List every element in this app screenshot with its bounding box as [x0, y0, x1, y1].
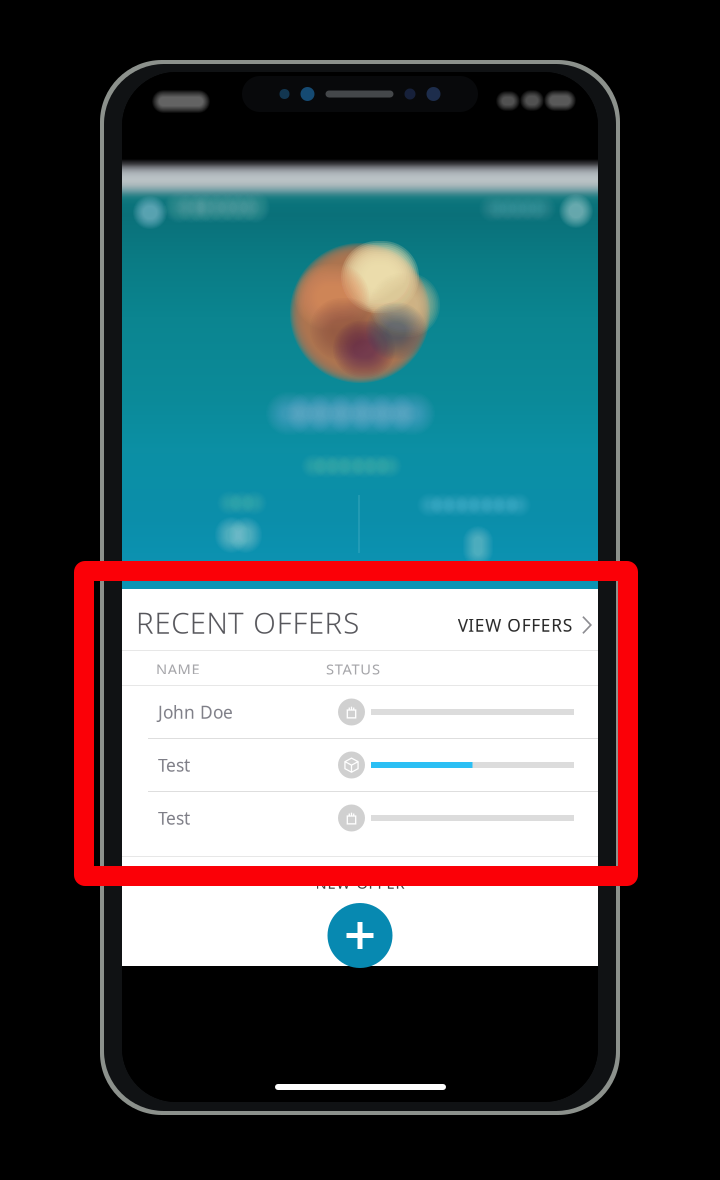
staticText: NEW OFFER	[315, 873, 404, 893]
staticText: NAME	[156, 659, 199, 678]
button[interactable]: VIEW OFFERS	[452, 603, 592, 647]
button[interactable]: Test	[122, 792, 598, 844]
button[interactable]: Test	[122, 739, 598, 791]
button[interactable]: New offer	[327, 903, 392, 968]
staticText: STATUS	[326, 659, 380, 678]
staticText: John Doe	[158, 700, 233, 723]
staticText: Test	[158, 806, 190, 829]
staticText: RECENT OFFERS	[136, 603, 359, 642]
staticText: VIEW OFFERS	[458, 613, 573, 636]
button[interactable]: John Doe	[122, 686, 598, 738]
staticText: Test	[158, 753, 190, 776]
